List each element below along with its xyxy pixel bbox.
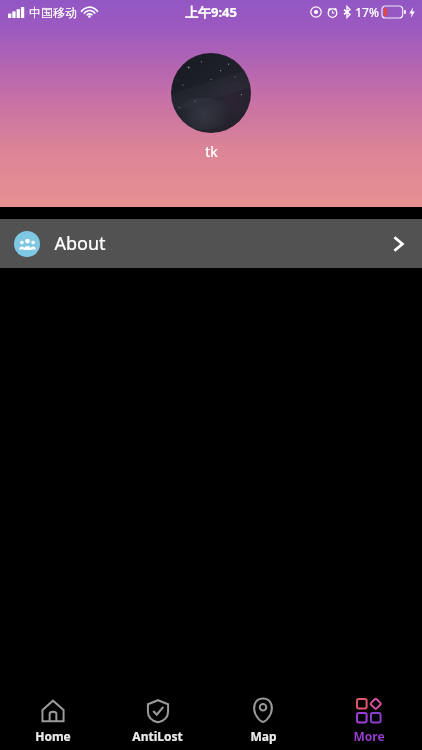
button[interactable]: Profile photo (171, 53, 251, 133)
staticText: AntiLost (132, 728, 183, 744)
button[interactable]: AntiLost (105, 693, 210, 748)
staticText: 上午9:45 (185, 3, 237, 21)
staticText: tk (205, 142, 218, 161)
staticText: 中国移动 (29, 5, 77, 20)
staticText: 17% (355, 4, 379, 20)
staticText: Map (250, 728, 277, 744)
staticText: About (54, 231, 106, 256)
button[interactable]: Home (0, 693, 105, 748)
staticText: Home (35, 728, 71, 744)
button[interactable]: More (316, 693, 422, 748)
button[interactable]: About (0, 219, 422, 268)
button[interactable]: Map (210, 693, 316, 748)
staticText: More (353, 728, 385, 744)
